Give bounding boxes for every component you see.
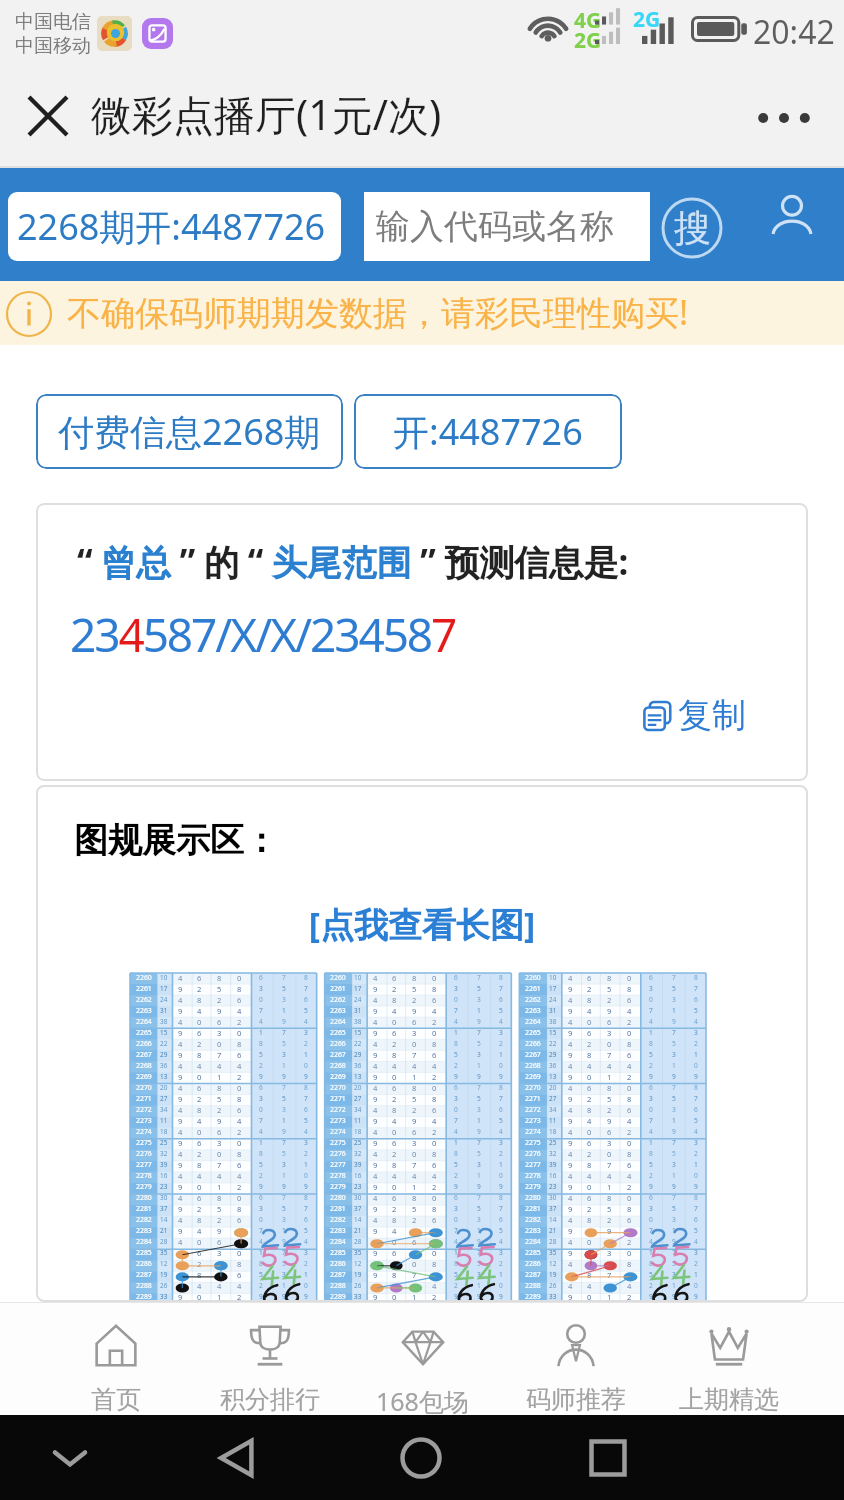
staticText: 0 bbox=[649, 1215, 653, 1224]
staticText: 0 bbox=[432, 1193, 437, 1203]
staticText: 7 bbox=[477, 1138, 481, 1147]
button[interactable]: 积分排行 bbox=[193, 1302, 346, 1415]
button[interactable]: Hide keyboard bbox=[38, 1415, 102, 1500]
staticText: 1 bbox=[304, 1160, 308, 1169]
button[interactable]: Close bbox=[0, 68, 91, 168]
staticText: 3 bbox=[259, 1094, 263, 1103]
staticText: 付费信息2268期 bbox=[58, 407, 321, 456]
button[interactable]: 复制 bbox=[637, 690, 750, 741]
button[interactable]: 首页 bbox=[39, 1302, 193, 1415]
staticText: 2 bbox=[607, 995, 612, 1005]
staticText: 9 bbox=[649, 1072, 653, 1081]
staticText: 8 bbox=[197, 1215, 202, 1225]
staticText: 9 bbox=[178, 1028, 183, 1038]
button[interactable]: 码师推荐 bbox=[499, 1302, 652, 1415]
staticText: 2279 bbox=[525, 1182, 541, 1191]
staticText: 1 bbox=[259, 1248, 263, 1257]
staticText: 1 bbox=[694, 1270, 698, 1279]
staticText: 7 bbox=[499, 984, 503, 993]
staticText: 4 bbox=[178, 1259, 183, 1269]
staticText: 6 bbox=[237, 1050, 242, 1060]
staticText: 2 bbox=[587, 1094, 592, 1104]
staticText: 6 bbox=[304, 995, 308, 1004]
staticText: 4 bbox=[568, 1039, 573, 1049]
staticText: 2271 bbox=[330, 1094, 346, 1103]
staticText: 23 bbox=[160, 1182, 168, 1191]
staticText: 5 bbox=[282, 984, 286, 993]
button[interactable]: 开:4487726 bbox=[354, 394, 622, 469]
staticText: 7 bbox=[454, 1226, 458, 1235]
staticText: 2278 bbox=[136, 1171, 152, 1180]
button[interactable]: More options bbox=[738, 68, 830, 168]
staticText: 9 bbox=[373, 1160, 378, 1170]
staticText: 9 bbox=[499, 1182, 503, 1191]
staticText: 18 bbox=[160, 1127, 168, 1136]
staticText: 0 bbox=[237, 1138, 242, 1148]
staticText: 4 bbox=[568, 995, 573, 1005]
staticText: 0 bbox=[694, 1171, 698, 1180]
staticText: 6 bbox=[392, 1083, 397, 1093]
staticText: 1 bbox=[477, 1226, 481, 1235]
staticText: 9 bbox=[282, 1127, 286, 1136]
staticText: 8 bbox=[587, 1160, 592, 1170]
staticText: 0 bbox=[607, 1039, 612, 1049]
staticText: 8 bbox=[607, 973, 612, 983]
staticText: 34 bbox=[549, 1105, 557, 1114]
staticText: 4 bbox=[432, 1281, 437, 1291]
staticText: 4 bbox=[197, 1006, 202, 1016]
staticText: 4 bbox=[432, 1006, 437, 1016]
staticText: 6 bbox=[237, 995, 242, 1005]
staticText: 2 bbox=[587, 1149, 592, 1159]
staticText: 4 bbox=[178, 995, 183, 1005]
staticText: 7 bbox=[282, 1083, 286, 1092]
button[interactable]: Search bbox=[661, 197, 723, 259]
staticText: 6 bbox=[587, 1028, 592, 1038]
staticText: 2269 bbox=[525, 1072, 541, 1081]
staticText: 0 bbox=[499, 1171, 503, 1180]
staticText: 27 bbox=[549, 1094, 557, 1103]
staticText: 2268期开:4487726 bbox=[17, 202, 326, 251]
staticText: 1 bbox=[259, 1028, 263, 1037]
staticText: 4 bbox=[373, 1083, 378, 1093]
staticText: 9 bbox=[568, 1248, 573, 1258]
staticText: 0 bbox=[649, 995, 653, 1004]
staticText: 5 bbox=[499, 1116, 503, 1125]
staticText: 4 bbox=[178, 1105, 183, 1115]
staticText: 0 bbox=[304, 1171, 308, 1180]
staticText: 2276 bbox=[330, 1149, 346, 1158]
staticText: 7 bbox=[649, 1116, 653, 1125]
staticText: 6 bbox=[587, 1248, 592, 1258]
staticText: 0 bbox=[197, 1237, 202, 1247]
staticText: 9 bbox=[178, 1006, 183, 1016]
staticText: 8 bbox=[304, 973, 308, 982]
button[interactable]: Account bbox=[770, 193, 814, 237]
button[interactable]: Recent apps bbox=[576, 1415, 640, 1500]
staticText: 9 bbox=[304, 1182, 308, 1191]
staticText: 9 bbox=[373, 1270, 378, 1280]
staticText: 2 bbox=[694, 1039, 698, 1048]
staticText: 0 bbox=[432, 1083, 437, 1093]
staticText: 16 bbox=[160, 1171, 168, 1180]
button[interactable]: Home bbox=[389, 1415, 453, 1500]
staticText: 9 bbox=[178, 1226, 183, 1236]
button[interactable]: 付费信息2268期 bbox=[36, 394, 343, 469]
button[interactable]: Back bbox=[205, 1415, 269, 1500]
button[interactable]: 168包场 bbox=[346, 1302, 499, 1415]
staticText: 7 bbox=[607, 1050, 612, 1060]
staticText: 8 bbox=[649, 1259, 653, 1268]
button[interactable]: 上期精选 bbox=[652, 1302, 805, 1415]
staticText: 34 bbox=[354, 1105, 362, 1114]
button[interactable]: 2268期开:4487726 bbox=[8, 192, 341, 261]
staticText: 6 bbox=[454, 1193, 458, 1202]
staticText: “ 曾总 ” 的 “ 头尾范围 ” 预测信息是: bbox=[77, 538, 629, 586]
staticText: 4 bbox=[178, 1171, 183, 1181]
staticText: 4 bbox=[587, 1061, 592, 1071]
button[interactable]: 输入代码或名称 bbox=[364, 192, 650, 261]
staticText: 8 bbox=[392, 1160, 397, 1170]
staticText: 2 bbox=[627, 1017, 632, 1027]
staticText: 6 bbox=[499, 995, 503, 1004]
staticText: 16 bbox=[549, 1171, 557, 1180]
button[interactable]: [点我查看长图] bbox=[36, 901, 808, 947]
staticText: 9 bbox=[412, 1116, 417, 1126]
staticText: 31 bbox=[160, 1006, 168, 1015]
